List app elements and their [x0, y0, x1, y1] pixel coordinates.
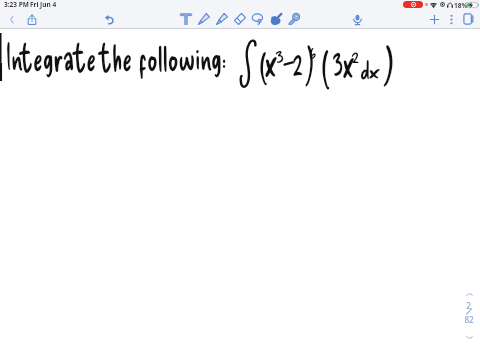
staticText: x [264, 32, 277, 85]
staticText: x [342, 34, 354, 85]
staticText: 3:23 PM [4, 0, 29, 9]
button[interactable]: Screen recording [403, 1, 423, 8]
button[interactable]: Next page [462, 330, 476, 344]
staticText: ) [382, 23, 395, 93]
button[interactable]: Record audio [348, 10, 366, 28]
button[interactable]: Share [22, 10, 41, 28]
staticText: 82 [464, 314, 474, 325]
button[interactable]: Undo [100, 10, 118, 28]
staticText: 3 [332, 32, 344, 84]
staticText: 6 [309, 39, 317, 63]
button[interactable]: More options [442, 10, 460, 28]
button[interactable]: Pen [195, 10, 213, 28]
staticText: x [368, 57, 380, 83]
button[interactable]: Previous page [462, 287, 476, 301]
button[interactable]: Pages [458, 10, 477, 28]
button[interactable]: Highlighter [213, 10, 231, 28]
staticText: 18% [454, 1, 468, 10]
button[interactable]: Text tool [177, 10, 195, 28]
button[interactable]: Back [2, 10, 21, 28]
staticText: 2 [351, 43, 359, 67]
button[interactable]: Lasso [249, 10, 267, 28]
staticText: ) [304, 24, 315, 94]
button[interactable]: Add [425, 10, 444, 28]
button[interactable]: Eraser [231, 10, 249, 28]
staticText: ( [259, 34, 269, 91]
staticText: d [360, 55, 371, 85]
staticText: ( [321, 28, 331, 98]
staticText: 3 [275, 40, 285, 67]
button[interactable]: Zoom [285, 10, 303, 28]
button[interactable]: Hand [267, 10, 285, 28]
staticText: Fri Jun 4 [30, 0, 57, 9]
staticText: 2 [292, 38, 303, 85]
staticText: 2 [466, 300, 471, 311]
staticText: Integrate the following: [6, 34, 227, 78]
